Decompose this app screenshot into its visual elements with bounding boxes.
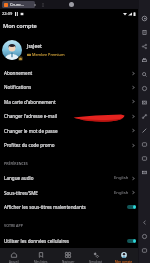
button[interactable]: Naviguer — [54, 248, 82, 263]
staticText: Langue audio — [4, 175, 34, 181]
staticText: Changer le mot de passe — [4, 128, 58, 134]
button[interactable]: Back — [139, 215, 150, 229]
button[interactable]: Reader view — [139, 11, 150, 25]
staticText: Naviguer — [62, 260, 75, 263]
button[interactable]: Email link — [139, 165, 150, 179]
staticText: Ma carte d'abonnement — [4, 99, 56, 105]
staticText: Mon compte — [3, 22, 37, 30]
button[interactable]: Screenshot — [139, 95, 150, 109]
button[interactable]: Changer l'adresse e-mail — [0, 109, 138, 123]
button[interactable]: Print — [139, 53, 150, 67]
staticText: Changer l'adresse e-mail — [4, 113, 57, 119]
button[interactable]: Afficher les sous-titres malentendants — [0, 200, 138, 214]
button[interactable]: Share — [139, 39, 150, 53]
button[interactable]: Browser account — [69, 2, 74, 7]
button[interactable]: Translate — [139, 137, 150, 151]
staticText: Simulcast — [89, 260, 103, 263]
button[interactable]: Notifications — [0, 80, 138, 94]
staticText: Afficher les sous-titres malentendants — [4, 204, 86, 210]
staticText: Profitez du code promo — [4, 142, 55, 148]
staticText: English — [114, 190, 129, 196]
button[interactable]: Ma carte d'abonnement — [0, 94, 138, 109]
button[interactable]: Find in page — [139, 67, 150, 81]
button[interactable]: Edit — [139, 123, 150, 137]
button[interactable]: Simulcast — [82, 248, 110, 263]
button[interactable]: Mon compte — [110, 248, 138, 263]
staticText: Utiliser les données cellulaires — [4, 238, 70, 244]
staticText: Mon compte — [115, 260, 133, 263]
button[interactable]: Save page — [139, 25, 150, 39]
staticText: JssJeet — [27, 43, 42, 50]
button[interactable]: Bookmark page — [139, 151, 150, 165]
button[interactable]: Abonnement — [0, 66, 138, 80]
button[interactable]: Close tab — [31, 1, 38, 8]
button[interactable]: Sous-titres/SME — [0, 185, 138, 200]
button[interactable]: Langue audio — [0, 171, 138, 185]
staticText: Membre Premium — [32, 52, 65, 57]
button[interactable]: More options — [39, 1, 46, 8]
button[interactable]: Utiliser les données cellulaires — [0, 233, 138, 248]
button[interactable]: Crunc… — [2, 1, 35, 8]
button[interactable]: Reload — [139, 229, 150, 243]
button[interactable]: Copy link — [139, 109, 150, 123]
staticText: VOTRE APP — [4, 223, 23, 228]
staticText: Crunc… — [10, 2, 25, 7]
staticText: Sous-titres/SME — [4, 190, 38, 196]
staticText: Accueil — [9, 260, 19, 263]
staticText: English — [114, 175, 129, 181]
staticText: 22:09 — [2, 11, 13, 16]
button[interactable]: Zoom — [139, 81, 150, 95]
button[interactable]: Mes listes — [27, 248, 54, 263]
button[interactable]: JssJeet — [0, 33, 138, 66]
button[interactable]: Toggle sidebar — [139, 243, 150, 257]
staticText: PRÉFÉRENCES — [4, 161, 28, 166]
staticText: Abonnement — [4, 70, 33, 76]
staticText: Mes listes — [34, 260, 48, 263]
button[interactable]: Changer le mot de passe — [0, 123, 138, 138]
button[interactable]: Profitez du code promo — [0, 138, 138, 152]
staticText: Notifications — [4, 84, 32, 90]
button[interactable]: Accueil — [0, 248, 27, 263]
